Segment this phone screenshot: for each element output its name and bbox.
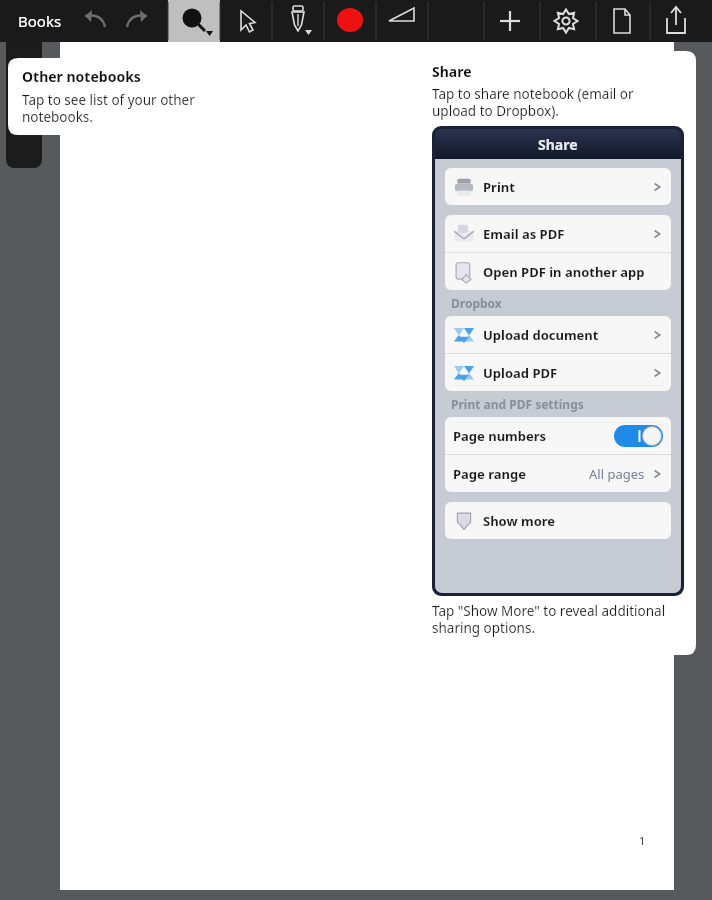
staticText: Books xyxy=(18,11,62,31)
staticText: Upload PDF xyxy=(483,364,558,382)
button[interactable]: Thickness xyxy=(376,0,428,42)
staticText: Print and PDF settings xyxy=(451,396,584,412)
button[interactable]: Color xyxy=(324,0,376,42)
staticText: Page numbers xyxy=(453,427,547,445)
button[interactable]: Books xyxy=(8,0,72,42)
button[interactable]: Select xyxy=(220,0,272,42)
staticText: Share xyxy=(538,135,578,154)
button[interactable]: Show more xyxy=(445,502,671,539)
staticText: Print xyxy=(483,178,515,196)
button[interactable]: Upload document xyxy=(445,316,671,353)
button[interactable]: Email as PDF xyxy=(445,215,671,252)
staticText: All pages xyxy=(589,465,645,483)
button[interactable]: Upload PDF xyxy=(445,354,671,391)
button[interactable]: Zoom xyxy=(168,0,220,42)
staticText: Tap to share notebook (email or upload t… xyxy=(432,85,634,120)
button[interactable]: Print xyxy=(445,168,671,205)
staticText: Other notebooks xyxy=(22,67,141,86)
button[interactable]: Settings xyxy=(540,0,592,42)
button[interactable]: Pen xyxy=(272,0,324,42)
staticText: Tap to see list of your other notebooks. xyxy=(22,91,195,126)
staticText: Page range xyxy=(453,465,526,483)
button[interactable]: Pages xyxy=(596,0,648,42)
button[interactable]: Notebook list xyxy=(6,42,42,168)
staticText: Open PDF in another app xyxy=(483,263,645,281)
button[interactable]: Page range xyxy=(445,455,671,492)
button[interactable]: Undo xyxy=(72,0,116,42)
staticText: Show more xyxy=(483,512,556,530)
staticText: 1 xyxy=(639,833,646,848)
staticText: Upload document xyxy=(483,326,599,344)
button[interactable]: Redo xyxy=(116,0,160,42)
staticText: Tap "Show More" to reveal additional sha… xyxy=(432,602,666,637)
staticText: Email as PDF xyxy=(483,225,565,243)
button[interactable]: Add page xyxy=(484,0,536,42)
staticText: Dropbox xyxy=(451,295,502,311)
button[interactable]: Page numbers xyxy=(445,417,671,454)
button[interactable]: Share xyxy=(650,0,702,42)
staticText: Share xyxy=(432,62,472,81)
button[interactable]: Open PDF in another app xyxy=(445,253,671,290)
